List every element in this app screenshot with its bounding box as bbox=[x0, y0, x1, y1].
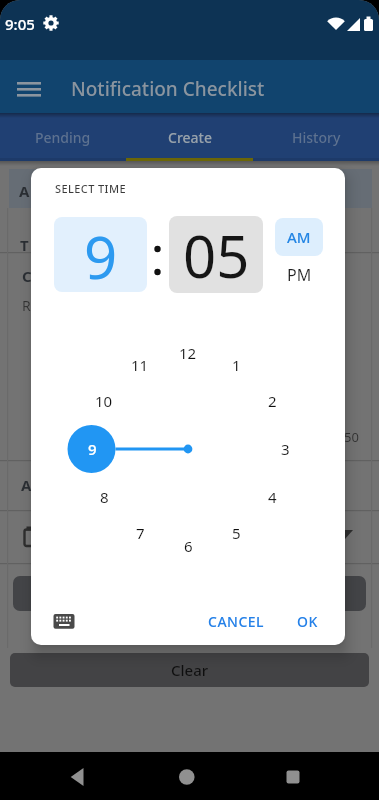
staticText: AM bbox=[287, 227, 311, 247]
staticText: 12 bbox=[179, 343, 197, 363]
staticText: 9:05 bbox=[5, 14, 35, 34]
staticText: History bbox=[292, 128, 341, 147]
staticText: 1 bbox=[232, 355, 241, 375]
staticText: Clear bbox=[171, 660, 209, 680]
staticText: R bbox=[22, 296, 31, 315]
button[interactable]: 05 bbox=[169, 216, 263, 293]
button[interactable]: OK bbox=[289, 608, 326, 634]
staticText: 7 bbox=[136, 523, 145, 543]
button[interactable]: CANCEL bbox=[198, 608, 274, 634]
staticText: PM bbox=[287, 264, 312, 286]
staticText: C bbox=[22, 266, 32, 286]
staticText: 50 bbox=[344, 428, 359, 446]
staticText: 10 bbox=[95, 391, 113, 411]
staticText: 05 bbox=[183, 216, 250, 293]
staticText: 2 bbox=[268, 391, 277, 411]
staticText: 5 bbox=[232, 523, 241, 543]
staticText: Notification Checklist bbox=[71, 76, 265, 102]
button[interactable] bbox=[127, 113, 253, 161]
button[interactable]: AM bbox=[275, 218, 323, 256]
staticText: A bbox=[19, 181, 30, 201]
staticText: A bbox=[21, 475, 32, 495]
staticText: SELECT TIME bbox=[55, 181, 126, 196]
staticText: CANCEL bbox=[208, 612, 265, 631]
staticText: 8 bbox=[100, 487, 109, 507]
staticText: 9 bbox=[84, 217, 118, 292]
staticText: Pending bbox=[35, 128, 91, 147]
staticText: 11 bbox=[131, 355, 149, 375]
staticText: OK bbox=[297, 612, 318, 631]
staticText: 6 bbox=[184, 536, 193, 556]
staticText: Create bbox=[168, 128, 212, 147]
button[interactable] bbox=[50, 611, 78, 632]
button[interactable] bbox=[0, 113, 127, 161]
button[interactable]: Clear bbox=[10, 653, 369, 687]
button[interactable]: PM bbox=[275, 256, 323, 294]
button[interactable]: 9 bbox=[54, 217, 147, 292]
button[interactable] bbox=[253, 113, 379, 161]
staticText: 3 bbox=[281, 439, 290, 459]
staticText: 4 bbox=[268, 487, 277, 507]
staticText: T bbox=[20, 235, 29, 255]
staticText: 9 bbox=[88, 439, 97, 459]
